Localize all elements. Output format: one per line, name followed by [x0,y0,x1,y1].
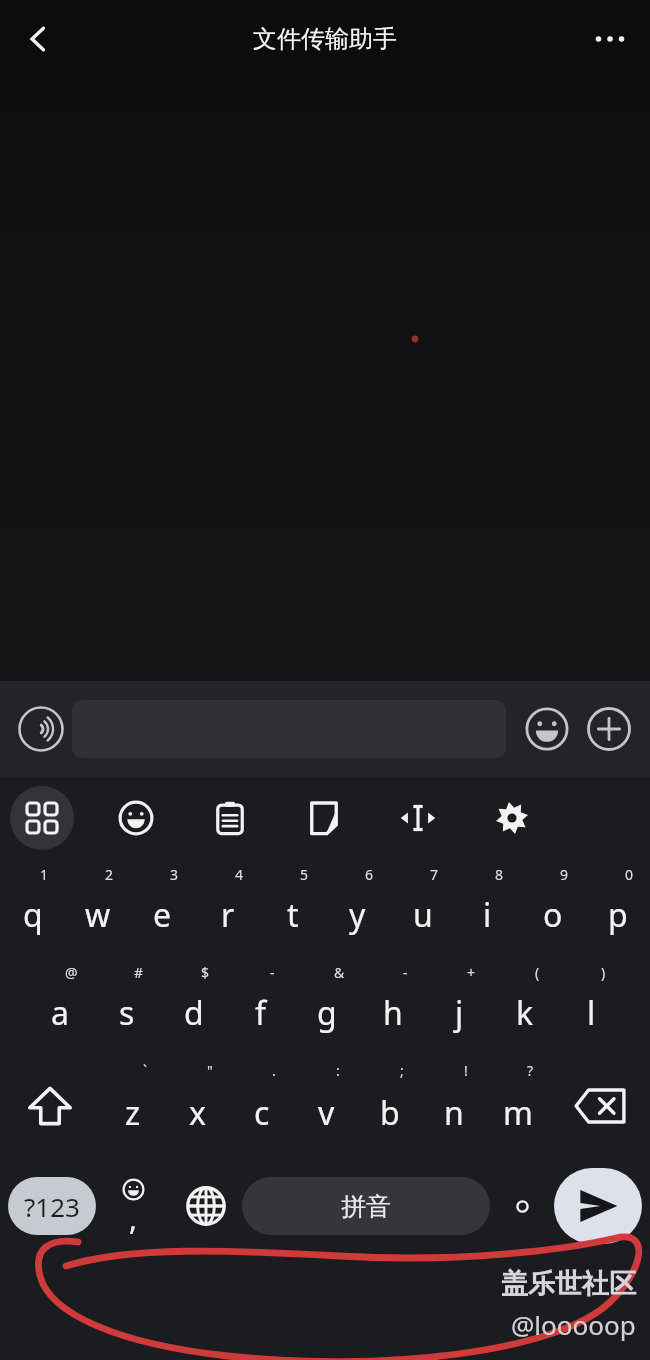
staticText: f [255,991,267,1035]
button[interactable]: 9 [520,859,585,957]
staticText: n [444,1091,464,1135]
staticText: u [413,893,433,937]
button[interactable]: Send [554,1168,642,1244]
staticText: 8 [495,865,504,884]
staticText: m [503,1091,533,1135]
staticText: x [189,1091,206,1135]
staticText: , [129,1198,138,1239]
staticText: b [380,1091,400,1135]
staticText: o [543,893,563,937]
staticText: @looooop [511,1307,636,1342]
button[interactable]: Backspace [550,1055,650,1157]
staticText: 1 [40,865,49,884]
button[interactable]: - [227,957,294,1055]
button[interactable]: Move cursor [386,786,450,850]
staticText: j [455,991,464,1035]
staticText: i [483,893,492,937]
staticText: - [270,963,275,982]
staticText: k [516,991,534,1035]
staticText: c [254,1091,270,1135]
staticText: ; [400,1061,404,1080]
staticText: : [336,1061,340,1080]
button[interactable]: ` [100,1055,165,1157]
button[interactable]: 3 [130,859,195,957]
button[interactable]: Clipboard [198,786,262,850]
staticText: + [467,963,476,982]
button[interactable]: ( [492,957,558,1055]
button[interactable]: ; [358,1055,422,1157]
button[interactable]: $ [160,957,227,1055]
button[interactable]: Comma [96,1157,170,1255]
button[interactable]: " [165,1055,230,1157]
staticText: q [23,893,43,937]
button[interactable]: 7 [390,859,455,957]
button[interactable]: 6 [325,859,390,957]
button[interactable]: @ [26,957,93,1055]
staticText: 0 [625,865,634,884]
button[interactable]: 2 [65,859,130,957]
button[interactable]: Add attachment [578,698,640,760]
button[interactable]: ) [558,957,624,1055]
staticText: t [287,893,299,937]
button[interactable]: 5 [260,859,325,957]
staticText: ?123 [24,1189,80,1224]
staticText: 5 [300,865,309,884]
staticText: 文件传输助手 [253,24,397,54]
button[interactable]: 拼音 [242,1177,490,1235]
button[interactable]: & [294,957,360,1055]
staticText: l [587,991,596,1035]
button[interactable]: Emoji keyboard [104,786,168,850]
button[interactable]: Emoji [516,698,578,760]
button[interactable]: ? [486,1055,550,1157]
button[interactable]: ?123 [8,1177,96,1235]
staticText: s [119,991,135,1035]
staticText: y [349,893,366,937]
button[interactable]: Shift [0,1055,100,1157]
staticText: ) [601,963,606,982]
staticText: # [134,963,144,982]
button[interactable]: Handwriting input [292,786,356,850]
staticText: ? [527,1061,534,1080]
staticText: . [272,1061,276,1080]
staticText: 3 [170,865,179,884]
staticText: 拼音 [341,1191,391,1222]
button[interactable]: 0 [585,859,650,957]
staticText: e [153,893,172,937]
button[interactable]: ! [422,1055,486,1157]
button[interactable]: More options [580,9,640,69]
button[interactable]: : [294,1055,358,1157]
staticText: - [403,963,408,982]
button[interactable]: Change language [170,1157,242,1255]
staticText: p [608,893,628,937]
staticText: " [207,1061,213,1080]
button[interactable]: Period [490,1157,554,1255]
button[interactable]: 4 [195,859,260,957]
staticText: & [334,963,345,982]
button[interactable]: Settings [480,786,544,850]
staticText: g [317,991,337,1035]
button[interactable]: Back [8,9,68,69]
staticText: 4 [235,865,244,884]
staticText: 6 [365,865,374,884]
staticText: v [318,1091,335,1135]
staticText: ( [535,963,540,982]
button[interactable]: + [426,957,492,1055]
staticText: h [383,991,403,1035]
button[interactable]: Voice input [10,698,72,760]
staticText: 9 [560,865,569,884]
button[interactable]: 1 [0,859,65,957]
staticText: z [125,1091,141,1135]
button[interactable]: - [360,957,426,1055]
staticText: @ [65,963,78,982]
staticText: ` [143,1061,147,1080]
staticText: ! [464,1061,468,1080]
staticText: $ [201,963,210,982]
staticText: 2 [105,865,114,884]
button[interactable]: 8 [455,859,520,957]
staticText: w [85,893,111,937]
button[interactable]: Keyboard layouts [10,786,74,850]
staticText: 7 [430,865,439,884]
button[interactable]: . [230,1055,294,1157]
button[interactable]: # [93,957,160,1055]
